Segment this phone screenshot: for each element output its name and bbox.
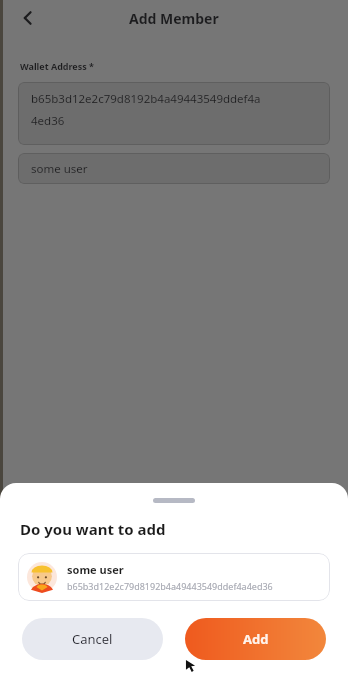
button[interactable]: Add xyxy=(185,618,326,660)
staticText: Cancel xyxy=(72,630,113,648)
staticText: b65b3d12e2c79d8192b4a49443549ddef4a4ed36 xyxy=(67,580,273,592)
staticText: Add Member xyxy=(129,9,219,28)
button[interactable]: Back xyxy=(12,2,44,34)
staticText: Do you want to add xyxy=(20,519,166,539)
button[interactable]: some user xyxy=(18,553,330,601)
staticText: some user xyxy=(31,161,88,177)
button[interactable]: some user xyxy=(18,153,330,184)
staticText: Wallet Address * xyxy=(20,60,94,72)
staticText: 4ed36 xyxy=(31,113,65,129)
button[interactable]: Cancel xyxy=(22,618,163,660)
staticText: Add xyxy=(243,630,269,648)
button[interactable]: b65b3d12e2c79d8192b4a49443549ddef4a xyxy=(18,82,330,145)
staticText: b65b3d12e2c79d8192b4a49443549ddef4a xyxy=(31,91,261,107)
staticText: some user xyxy=(67,562,124,577)
